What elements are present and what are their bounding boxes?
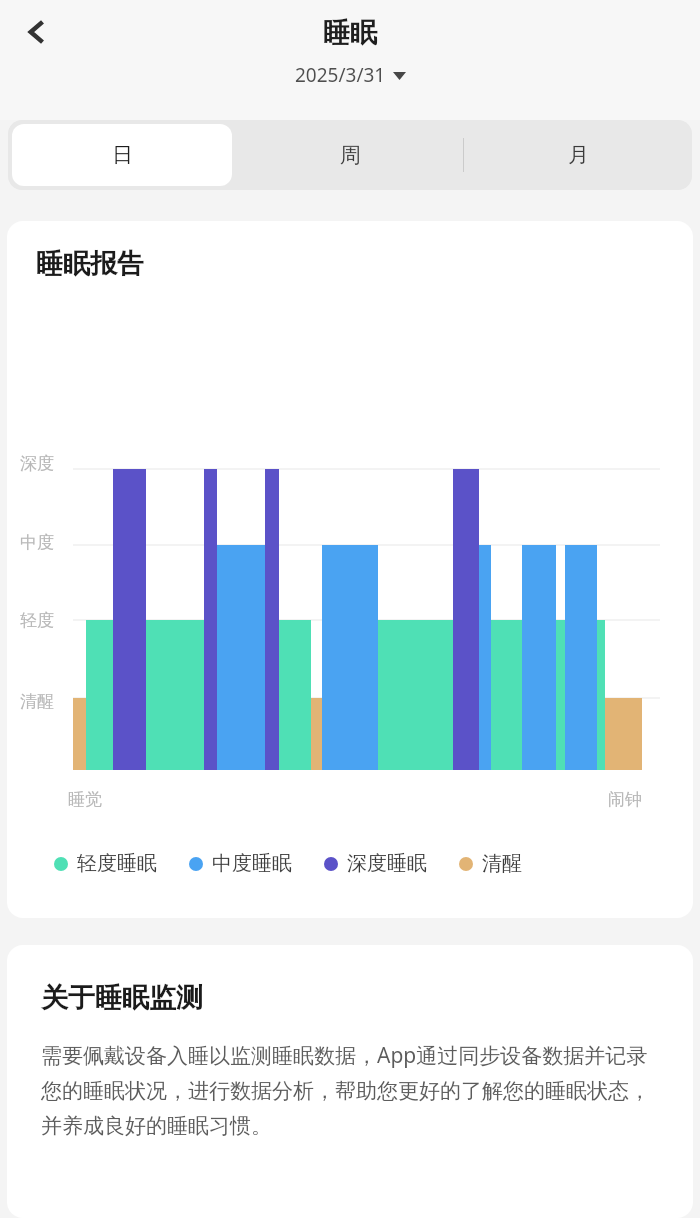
- staticText: 月: [568, 142, 589, 168]
- staticText: 清醒: [482, 851, 522, 876]
- staticText: 睡觉: [68, 789, 102, 810]
- button[interactable]: 中度睡眠: [189, 851, 292, 876]
- button[interactable]: 日: [12, 124, 232, 186]
- staticText: 中度: [20, 532, 54, 553]
- button[interactable]: 月: [464, 120, 692, 190]
- staticText: 日: [112, 142, 133, 168]
- staticText: 需要佩戴设备入睡以监测睡眠数据，App通过同步设备数据并记录您的睡眠状况，进行数…: [41, 1041, 667, 1139]
- staticText: 睡眠报告: [36, 247, 144, 281]
- button[interactable]: 2025/3/31: [289, 60, 412, 90]
- button[interactable]: 清醒: [459, 851, 522, 876]
- staticText: 中度睡眠: [212, 851, 292, 876]
- staticText: 睡眠: [323, 16, 377, 50]
- staticText: 轻度: [20, 610, 54, 631]
- button[interactable]: 深度睡眠: [324, 851, 427, 876]
- staticText: 2025/3/31: [295, 62, 386, 88]
- button[interactable]: Back: [8, 4, 64, 60]
- staticText: 轻度睡眠: [77, 851, 157, 876]
- staticText: 深度: [20, 453, 54, 474]
- staticText: 闹钟: [608, 789, 642, 810]
- staticText: 周: [340, 142, 361, 168]
- button[interactable]: 轻度睡眠: [54, 851, 157, 876]
- staticText: 清醒: [20, 691, 54, 712]
- staticText: 关于睡眠监测: [41, 981, 203, 1015]
- button[interactable]: 周: [236, 120, 464, 190]
- staticText: 深度睡眠: [347, 851, 427, 876]
